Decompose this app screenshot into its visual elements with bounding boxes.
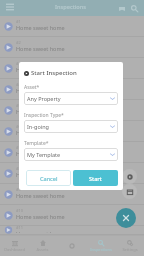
staticText: Home sweet home bbox=[16, 129, 65, 136]
staticText: Home sweet home bbox=[16, 24, 65, 31]
staticText: Asset* bbox=[24, 84, 40, 91]
staticText: #7 bbox=[16, 145, 21, 150]
staticText: #9 bbox=[16, 187, 21, 192]
staticText: Home sweet home bbox=[16, 230, 65, 233]
staticText: Home sweet home bbox=[16, 45, 65, 52]
staticText: Home sweet home bbox=[16, 87, 65, 94]
staticText: #11 bbox=[16, 225, 24, 230]
staticText: Home sweet home bbox=[16, 108, 65, 115]
button[interactable]: #8 bbox=[0, 163, 144, 184]
staticText: #5 bbox=[16, 103, 21, 108]
staticText: #1 bbox=[16, 19, 21, 24]
button[interactable]: #7 bbox=[0, 142, 144, 163]
button[interactable]: Start now bbox=[122, 169, 137, 184]
staticText: Home sweet home bbox=[16, 150, 65, 157]
button[interactable]: Start bbox=[73, 170, 118, 186]
button[interactable]: Search bbox=[128, 2, 141, 15]
staticText: Settings bbox=[122, 247, 138, 252]
staticText: #4 bbox=[16, 82, 21, 87]
button[interactable]: Inspections bbox=[86, 236, 115, 256]
button[interactable]: #9 bbox=[0, 184, 144, 205]
button[interactable]: #4 bbox=[0, 79, 144, 100]
button[interactable]: #1 bbox=[0, 16, 144, 37]
button[interactable]: #2 bbox=[0, 37, 144, 58]
staticText: Home sweet home bbox=[16, 171, 65, 178]
staticText: Inspection Type* bbox=[24, 112, 64, 119]
button[interactable]: Any Property bbox=[24, 92, 118, 105]
staticText: #6 bbox=[16, 124, 21, 129]
button[interactable]: Dashboard bbox=[0, 236, 28, 256]
staticText: Any Property bbox=[27, 95, 61, 102]
button[interactable]: #3 bbox=[0, 58, 144, 79]
staticText: Cancel bbox=[40, 175, 58, 182]
staticText: Home sweet home bbox=[16, 192, 65, 199]
staticText: Start Inspection bbox=[31, 69, 77, 77]
staticText: Start bbox=[89, 175, 102, 182]
staticText: Dashboard bbox=[4, 247, 25, 252]
button[interactable]: #6 bbox=[0, 121, 144, 142]
staticText: #10 bbox=[16, 208, 24, 213]
button[interactable]: My Template bbox=[24, 148, 118, 161]
staticText: Inspections bbox=[90, 247, 112, 252]
staticText: Home sweet home bbox=[16, 213, 65, 220]
button[interactable]: Schedule bbox=[122, 184, 137, 199]
button[interactable]: Close menu bbox=[116, 208, 136, 228]
staticText: #8 bbox=[16, 166, 21, 171]
button[interactable]: Bookmarks bbox=[115, 2, 128, 15]
staticText: #3 bbox=[16, 61, 21, 66]
button[interactable]: Cancel bbox=[26, 170, 71, 186]
button[interactable]: In-going bbox=[24, 120, 118, 133]
staticText: Template* bbox=[24, 140, 49, 147]
button[interactable]: #11 bbox=[0, 226, 144, 235]
button[interactable]: #10 bbox=[0, 205, 144, 226]
staticText: My Template bbox=[27, 151, 61, 158]
button[interactable]: Assets bbox=[28, 236, 57, 256]
staticText: Home sweet home bbox=[16, 66, 65, 73]
staticText: #2 bbox=[16, 40, 21, 45]
staticText: Inspections bbox=[55, 3, 86, 11]
button[interactable]: Menu bbox=[3, 0, 17, 14]
button[interactable]: #5 bbox=[0, 100, 144, 121]
button[interactable]: Settings bbox=[115, 236, 144, 256]
staticText: Assets bbox=[36, 247, 49, 252]
staticText: In-going bbox=[27, 123, 49, 130]
